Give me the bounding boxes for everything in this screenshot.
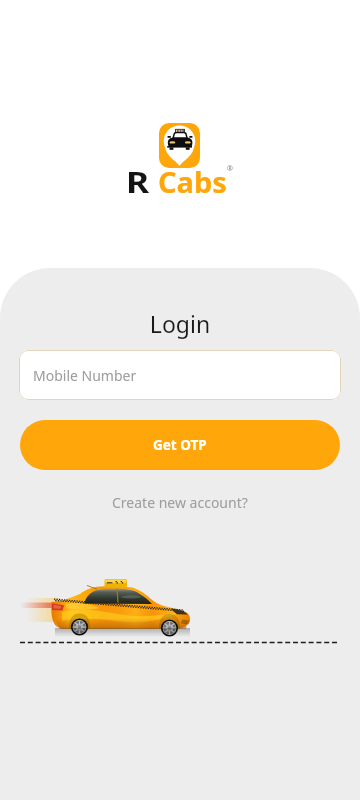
staticText: Login	[0, 308, 360, 339]
staticText: Cabs	[158, 162, 227, 201]
staticText: Get OTP	[153, 436, 207, 454]
button[interactable]: Get OTP	[20, 420, 340, 470]
staticText: Create new account?	[112, 493, 248, 512]
staticText: R	[126, 162, 150, 201]
staticText: Mobile Number	[33, 366, 137, 385]
button[interactable]: Mobile Number	[19, 350, 341, 400]
staticText: ®	[227, 164, 233, 174]
button[interactable]: Create new account?	[0, 484, 360, 520]
